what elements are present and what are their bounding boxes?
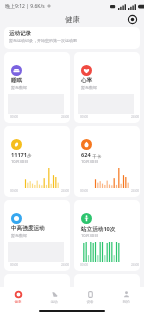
staticText: 10月30日 — [11, 159, 29, 164]
button[interactable]: 运动 — [36, 287, 72, 305]
button[interactable] — [74, 274, 140, 304]
staticText: 暂无数据 — [81, 85, 97, 90]
button[interactable]: 站立活动10次 — [74, 200, 140, 271]
button[interactable]: 我的 — [108, 287, 144, 305]
staticText: 10月30日 — [81, 159, 99, 164]
staticText: 00:00 — [80, 189, 89, 193]
button[interactable]: More options — [126, 13, 139, 26]
staticText: 心率 — [81, 77, 93, 84]
staticText: 00:00 — [80, 115, 89, 119]
staticText: 中高强度运动 — [11, 225, 45, 232]
staticText: 624 — [81, 151, 91, 159]
staticText: 暂无数据 — [11, 85, 27, 90]
button[interactable] — [4, 274, 70, 304]
staticText: 00:00 — [80, 263, 89, 267]
button[interactable]: 11171 — [4, 126, 70, 197]
staticText: 24:00 — [131, 189, 140, 193]
staticText: 00:00 — [10, 115, 19, 119]
staticText: 步 — [27, 153, 32, 159]
staticText: 暂无运动记录，开始您的第一次运动吧 — [9, 38, 77, 43]
staticText: 运动记录 — [9, 30, 31, 37]
staticText: 24:00 — [61, 115, 70, 119]
button[interactable]: 健康 — [0, 287, 36, 305]
staticText: 设备 — [86, 300, 94, 305]
button[interactable]: 心率 — [74, 52, 140, 123]
staticText: 11171 — [11, 151, 27, 159]
staticText: 24:00 — [131, 263, 140, 267]
staticText: 24:00 — [61, 189, 70, 193]
button[interactable]: 中高强度运动 — [4, 200, 70, 271]
staticText: 睡眠 — [11, 77, 23, 84]
staticText: 00:00 — [10, 263, 19, 267]
staticText: 千卡 — [91, 153, 102, 159]
staticText: 10月30日 — [81, 233, 99, 238]
button[interactable]: 设备 — [72, 287, 108, 305]
button[interactable]: 运动记录 — [4, 27, 140, 49]
staticText: 24:00 — [61, 263, 70, 267]
staticText: 24:00 — [131, 115, 140, 119]
staticText: 健康 — [14, 300, 22, 305]
button[interactable]: 睡眠 — [4, 52, 70, 123]
staticText: 健康 — [65, 15, 80, 24]
staticText: 站立活动10次 — [81, 225, 116, 233]
staticText: 我的 — [122, 300, 130, 305]
staticText: 晚上9:12 | 9.6K/s — [5, 3, 45, 10]
staticText: 00:00 — [10, 189, 19, 193]
button[interactable]: 624 — [74, 126, 140, 197]
staticText: 暂无数据 — [11, 233, 27, 238]
staticText: 运动 — [50, 300, 58, 305]
